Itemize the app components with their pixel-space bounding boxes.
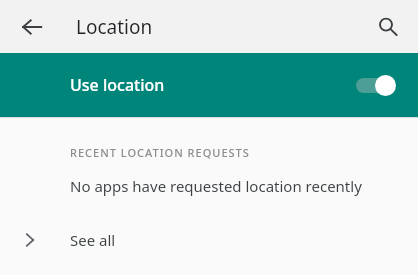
- button[interactable]: See all: [0, 212, 418, 268]
- button[interactable]: Search: [368, 7, 408, 47]
- button[interactable]: Back: [12, 7, 52, 47]
- staticText: See all: [70, 230, 116, 250]
- staticText: Location: [76, 14, 153, 40]
- button[interactable]: Use location: [0, 53, 418, 117]
- button[interactable]: No apps have requested location recently: [0, 160, 418, 212]
- staticText: Use location: [70, 74, 354, 96]
- staticText: No apps have requested location recently: [70, 176, 362, 196]
- staticText: RECENT LOCATION REQUESTS: [70, 145, 250, 160]
